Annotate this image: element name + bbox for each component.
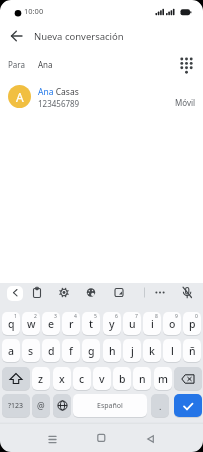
button[interactable]	[53, 394, 71, 417]
staticText: ?123	[8, 401, 24, 411]
button[interactable]	[44, 414, 61, 431]
button[interactable]: v	[93, 367, 111, 390]
button[interactable]: q	[2, 312, 20, 335]
staticText: 10:00	[24, 6, 44, 16]
button[interactable]: x	[53, 367, 71, 390]
button[interactable]: e	[42, 312, 60, 335]
button[interactable]: ?123	[2, 394, 30, 417]
staticText: e	[48, 317, 55, 331]
staticText: k	[149, 344, 155, 358]
button[interactable]: .	[151, 394, 169, 417]
button[interactable]	[179, 284, 196, 301]
button[interactable]	[2, 367, 30, 390]
button[interactable]	[56, 284, 73, 301]
staticText: Ana Casas	[38, 86, 79, 98]
button[interactable]	[83, 284, 100, 301]
button[interactable]: h	[103, 339, 121, 362]
button[interactable]: t	[82, 312, 100, 335]
button[interactable]: i	[143, 312, 161, 335]
staticText: n	[139, 372, 146, 386]
staticText: d	[48, 344, 55, 358]
staticText: i	[151, 317, 154, 331]
button[interactable]	[176, 54, 197, 75]
staticText: o	[169, 317, 176, 331]
staticText: ñ	[189, 344, 196, 358]
staticText: l	[171, 344, 174, 358]
button[interactable]	[152, 284, 169, 301]
button[interactable]: f	[62, 339, 80, 362]
staticText: 8	[155, 313, 158, 320]
button[interactable]: a	[2, 339, 20, 362]
button[interactable]: d	[42, 339, 60, 362]
staticText: 6	[115, 313, 118, 320]
staticText: b	[119, 372, 126, 386]
staticText: 1	[14, 313, 17, 320]
staticText: 0	[195, 313, 198, 320]
button[interactable]: ñ	[183, 339, 201, 362]
staticText: 2	[34, 313, 37, 320]
staticText: f	[69, 344, 73, 358]
staticText: h	[109, 344, 116, 358]
button[interactable]: r	[62, 312, 80, 335]
staticText: z	[38, 372, 44, 386]
button[interactable]: c	[73, 367, 91, 390]
button[interactable]	[29, 284, 46, 301]
button[interactable]: m	[154, 367, 172, 390]
button[interactable]: o	[163, 312, 181, 335]
button[interactable]: u	[123, 312, 141, 335]
button[interactable]: j	[123, 339, 141, 362]
button[interactable]	[0, 52, 176, 78]
staticText: .	[159, 400, 162, 412]
button[interactable]	[174, 367, 202, 390]
button[interactable]: A	[0, 81, 203, 112]
staticText: a	[8, 344, 15, 358]
staticText: 9	[175, 313, 178, 320]
staticText: r	[69, 317, 74, 331]
staticText: v	[99, 372, 105, 386]
button[interactable]	[6, 25, 28, 47]
staticText: Para	[8, 59, 25, 70]
staticText: q	[8, 317, 15, 331]
staticText: j	[131, 344, 134, 358]
button[interactable]: g	[82, 339, 100, 362]
staticText: c	[79, 372, 85, 386]
staticText: 3	[54, 313, 57, 320]
staticText: @	[37, 400, 45, 412]
button[interactable]: @	[32, 394, 50, 417]
button[interactable]	[7, 286, 23, 301]
button[interactable]: Español	[73, 394, 147, 417]
button[interactable]: n	[133, 367, 151, 390]
staticText: Nueva conversación	[34, 30, 124, 43]
button[interactable]: l	[163, 339, 181, 362]
staticText: t	[89, 317, 94, 331]
button[interactable]: s	[22, 339, 40, 362]
button[interactable]: b	[113, 367, 131, 390]
button[interactable]: y	[103, 312, 121, 335]
staticText: u	[129, 317, 136, 331]
staticText: m	[158, 372, 168, 386]
button[interactable]: p	[183, 312, 201, 335]
staticText: p	[189, 317, 196, 331]
button[interactable]	[142, 414, 159, 431]
staticText: Ana	[38, 59, 53, 70]
staticText: x	[59, 372, 65, 386]
staticText: Español	[97, 401, 123, 411]
staticText: w	[27, 317, 36, 331]
staticText: Móvil	[175, 97, 196, 108]
staticText: y	[109, 317, 115, 331]
staticText: 123456789	[38, 98, 80, 109]
button[interactable]	[111, 284, 128, 301]
button[interactable]	[93, 414, 110, 431]
staticText: 4	[74, 313, 77, 320]
button[interactable]	[174, 394, 202, 417]
button[interactable]: k	[143, 339, 161, 362]
button[interactable]: z	[32, 367, 50, 390]
staticText: 5	[94, 313, 97, 320]
staticText: 7	[135, 313, 138, 320]
button[interactable]: w	[22, 312, 40, 335]
staticText: g	[88, 344, 95, 358]
staticText: s	[28, 344, 34, 358]
staticText: A	[16, 89, 24, 105]
